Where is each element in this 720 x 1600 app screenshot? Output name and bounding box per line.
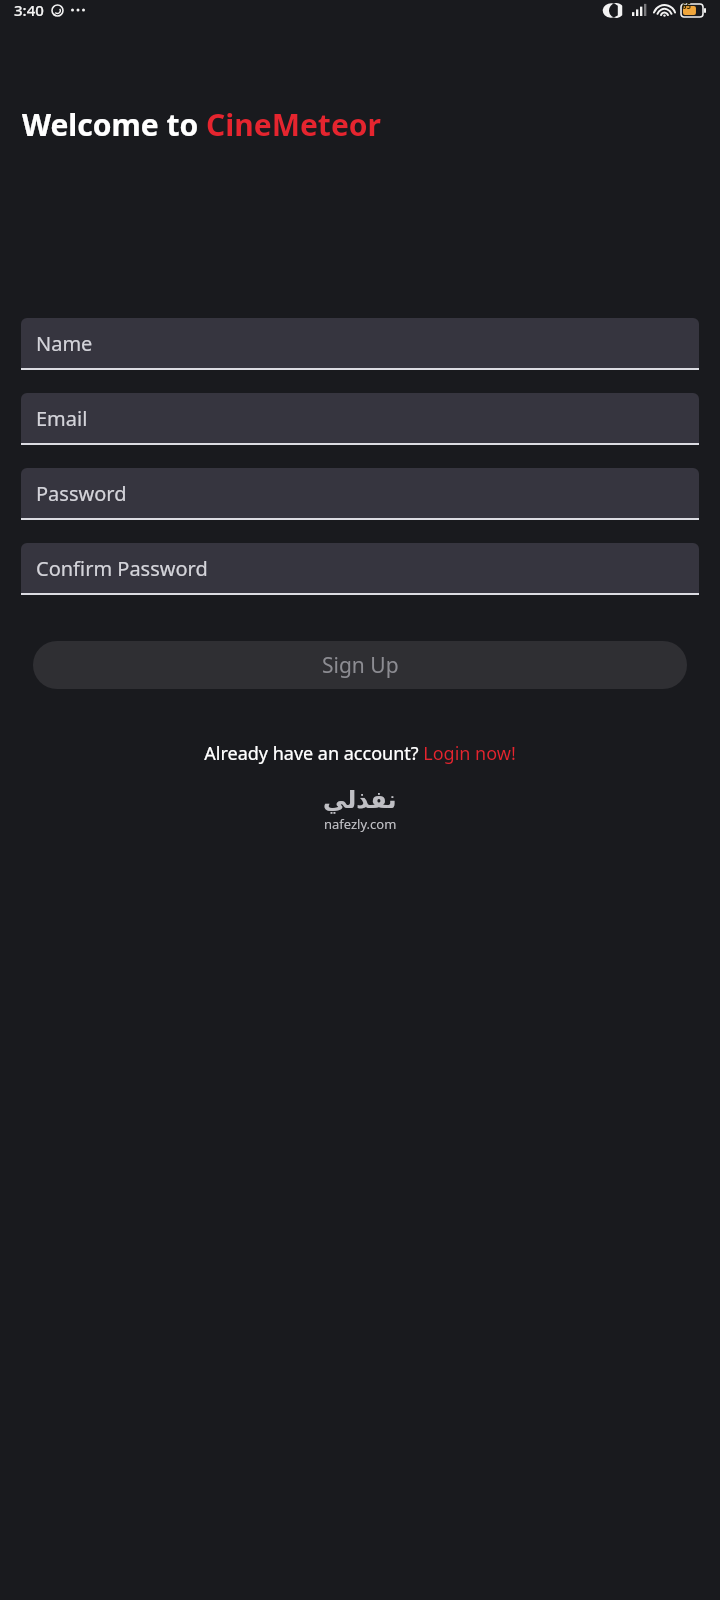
- staticText: Password: [36, 480, 127, 507]
- staticText: 3:40: [14, 0, 44, 20]
- staticText: nafezly.com: [324, 815, 397, 833]
- staticText: Name: [36, 330, 93, 357]
- staticText: Sign Up: [322, 651, 399, 680]
- button[interactable]: Sign Up: [33, 641, 687, 689]
- button[interactable]: Name: [21, 318, 699, 370]
- staticText: Already have an account? Login now!: [204, 741, 516, 766]
- button[interactable]: Password: [21, 468, 699, 520]
- button[interactable]: Confirm Password: [21, 543, 699, 595]
- staticText: Email: [36, 405, 88, 432]
- staticText: 65: [682, 0, 692, 11]
- staticText: Welcome to CineMeteor: [22, 104, 381, 145]
- staticText: Confirm Password: [36, 555, 208, 582]
- button[interactable]: Email: [21, 393, 699, 445]
- staticText: نفذلي: [323, 786, 397, 814]
- button[interactable]: Already have an account? Login now!: [0, 741, 720, 766]
